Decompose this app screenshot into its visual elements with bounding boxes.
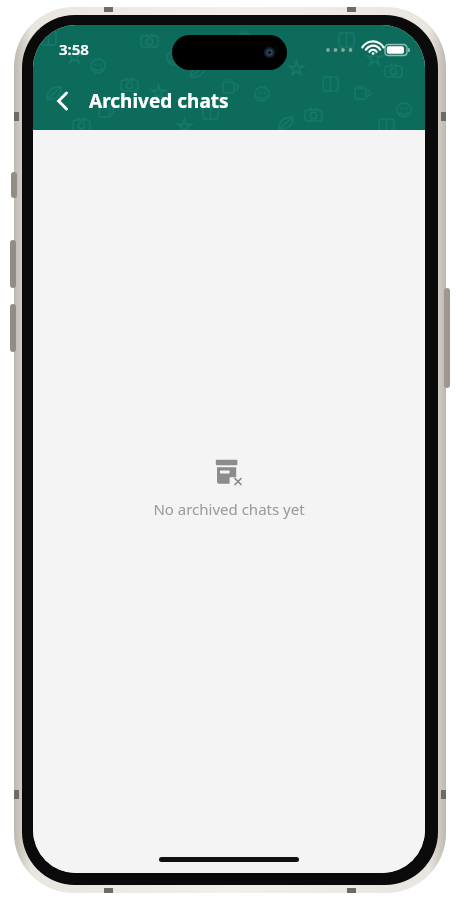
staticText: No archived chats yet bbox=[153, 499, 305, 519]
staticText: 3:58 bbox=[59, 39, 89, 59]
button[interactable]: Back bbox=[41, 79, 85, 123]
staticText: Archived chats bbox=[89, 88, 229, 114]
